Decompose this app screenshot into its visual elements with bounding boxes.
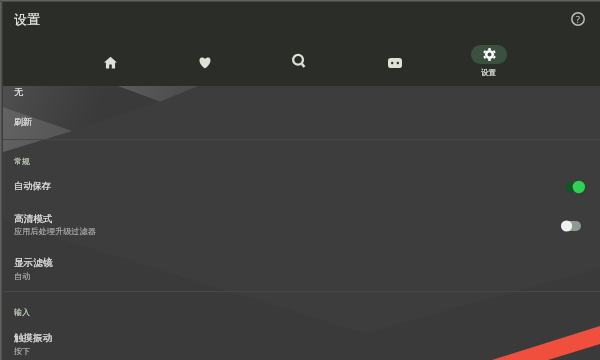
button[interactable]: 触摸振动 (0, 322, 600, 360)
button[interactable]: 自动保存 (0, 172, 600, 203)
staticText: 高清模式 (14, 213, 53, 225)
button[interactable]: Toggle on (561, 177, 589, 197)
button[interactable]: Search (275, 40, 323, 86)
staticText: 应用后处理升级过滤器 (14, 226, 96, 236)
button[interactable]: Favorites (181, 40, 229, 86)
staticText: 自动保存 (14, 180, 51, 192)
button[interactable]: 显示滤镜 (0, 245, 600, 291)
button[interactable]: 无 (0, 78, 600, 108)
staticText: 输入 (14, 307, 30, 317)
staticText: 常规 (14, 156, 30, 166)
staticText: 按下 (14, 346, 31, 356)
button[interactable]: 高清模式 (0, 203, 600, 245)
button[interactable]: Toggle off (557, 216, 585, 236)
button[interactable]: Controller (371, 40, 419, 86)
button[interactable]: 设置 (465, 40, 513, 86)
button[interactable]: Help (563, 4, 592, 33)
button[interactable]: Home (86, 40, 134, 86)
staticText: 无 (14, 86, 23, 97)
button[interactable]: 刷新 (0, 108, 600, 139)
staticText: ? (576, 13, 580, 25)
staticText: 设置 (14, 11, 40, 27)
staticText: 自动 (14, 271, 31, 281)
staticText: 刷新 (14, 116, 32, 127)
staticText: 触摸振动 (14, 332, 53, 344)
staticText: 设置 (481, 68, 497, 78)
staticText: 显示滤镜 (14, 257, 53, 269)
